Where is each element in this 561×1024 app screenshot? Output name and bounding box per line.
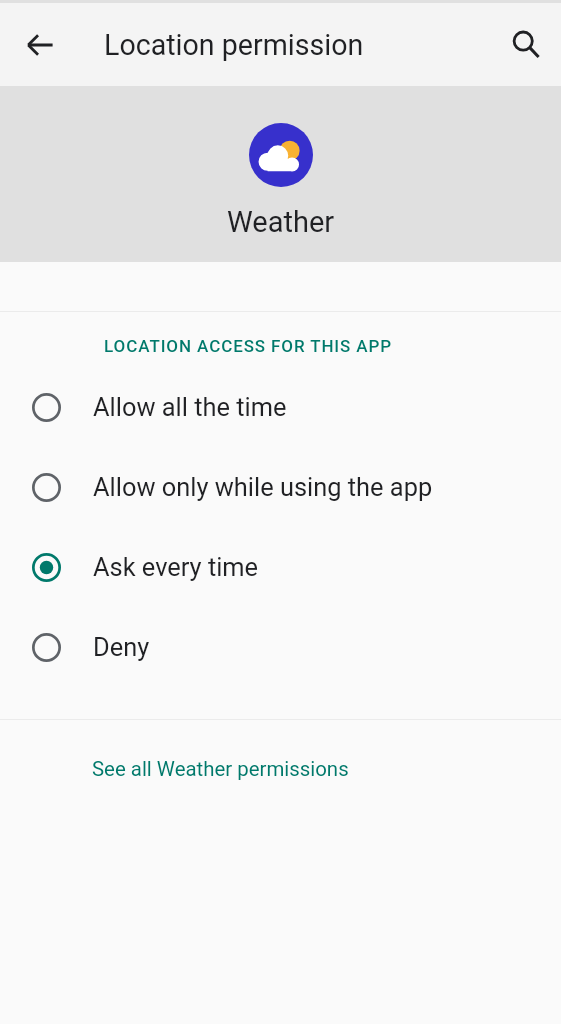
button[interactable]: See all Weather permissions	[0, 720, 561, 817]
button[interactable]: Ask every time	[0, 527, 561, 607]
staticText: See all Weather permissions	[92, 757, 349, 781]
staticText: Deny	[93, 632, 150, 662]
staticText: Location permission	[104, 28, 364, 62]
staticText: Ask every time	[93, 552, 259, 582]
staticText: LOCATION ACCESS FOR THIS APP	[104, 336, 393, 356]
button[interactable]: Allow all the time	[0, 367, 561, 447]
button[interactable]: Deny	[0, 607, 561, 687]
staticText: Weather	[227, 205, 335, 239]
button[interactable]: Allow only while using the app	[0, 447, 561, 527]
button[interactable]: Navigate up	[15, 20, 65, 70]
button[interactable]: Search	[501, 20, 551, 70]
staticText: Allow all the time	[93, 392, 287, 422]
staticText: Allow only while using the app	[93, 472, 433, 502]
